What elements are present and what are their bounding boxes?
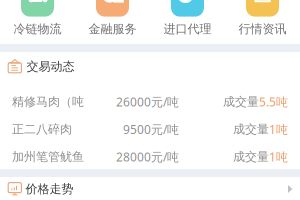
- staticText: 进口代理: [163, 22, 211, 36]
- staticText: 成交量: [233, 149, 269, 164]
- staticText: 成交量: [223, 94, 259, 109]
- staticText: 1吨: [269, 121, 288, 137]
- staticText: 冷链物流: [13, 22, 61, 36]
- staticText: 成交量: [233, 122, 269, 137]
- staticText: 28000元/吨: [116, 149, 179, 165]
- staticText: 正二八碎肉: [12, 122, 72, 137]
- staticText: 1吨: [269, 149, 288, 165]
- button[interactable]: 行情资讯: [225, 0, 300, 36]
- staticText: 金融服务: [88, 22, 136, 36]
- button[interactable]: 交易动态: [0, 59, 300, 74]
- staticText: 26000元/吨: [116, 94, 179, 110]
- staticText: 加州笔管鱿鱼: [12, 149, 84, 164]
- button[interactable]: 正二八碎肉: [0, 115, 300, 143]
- staticText: 9500元/吨: [123, 121, 179, 137]
- button[interactable]: 冷链物流: [0, 0, 75, 36]
- button[interactable]: 精修马肉（吨: [0, 88, 300, 115]
- staticText: 行情资讯: [238, 22, 286, 36]
- button[interactable]: 金融服务: [75, 0, 150, 36]
- button[interactable]: 进口代理: [150, 0, 225, 36]
- staticText: 精修马肉（吨: [12, 94, 84, 109]
- staticText: 交易动态: [27, 59, 75, 74]
- button[interactable]: 价格走势: [0, 182, 300, 196]
- staticText: 价格走势: [26, 182, 74, 196]
- staticText: 5.5吨: [259, 94, 288, 110]
- button[interactable]: 加州笔管鱿鱼: [0, 143, 300, 170]
